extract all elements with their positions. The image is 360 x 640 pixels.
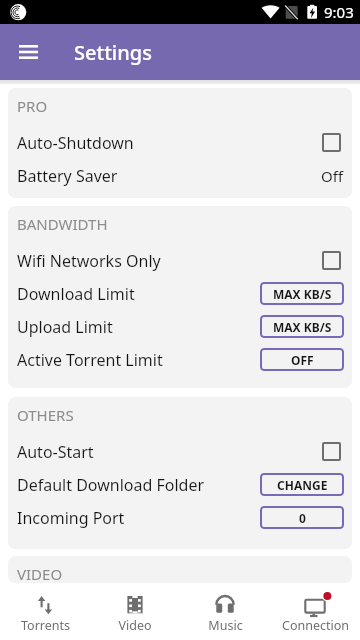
staticText: Settings [74, 39, 152, 66]
staticText: Music [208, 617, 243, 634]
staticText: MAX KB/S [273, 319, 332, 335]
staticText: Off [321, 166, 344, 186]
staticText: Active Torrent Limit [17, 349, 163, 371]
staticText: Download Limit [17, 283, 135, 305]
button[interactable]: Video [90, 583, 180, 640]
staticText: Battery Saver [17, 165, 118, 187]
staticText: PRO [17, 96, 48, 116]
button[interactable]: Auto-Start [8, 435, 352, 468]
button[interactable]: MAX KB/S [260, 315, 344, 338]
staticText: 0 [299, 510, 306, 526]
staticText: MAX KB/S [273, 286, 332, 302]
staticText: Incoming Port [17, 507, 125, 529]
button[interactable]: Torrents [0, 583, 90, 640]
staticText: VIDEO [17, 564, 63, 583]
staticText: Wifi Networks Only [17, 250, 161, 272]
staticText: Torrents [21, 617, 70, 634]
button[interactable]: Wifi Networks Only [8, 244, 352, 277]
staticText: Upload Limit [17, 316, 113, 338]
button[interactable]: Battery Saver [8, 159, 352, 192]
staticText: Auto-Shutdown [17, 132, 134, 154]
button[interactable]: 0 [260, 506, 344, 529]
staticText: Auto-Start [17, 441, 94, 463]
staticText: Video [118, 617, 152, 634]
staticText: BANDWIDTH [17, 214, 108, 234]
staticText: 9:03 [324, 2, 354, 22]
button[interactable]: Auto-Shutdown [8, 126, 352, 159]
staticText: CHANGE [277, 477, 328, 493]
button[interactable]: Music [180, 583, 270, 640]
button[interactable]: Connection [270, 583, 360, 640]
button[interactable]: OFF [260, 348, 344, 371]
button[interactable]: Open navigation drawer [8, 32, 48, 72]
staticText: OFF [291, 352, 314, 368]
staticText: OTHERS [17, 405, 74, 425]
staticText: Default Download Folder [17, 474, 205, 496]
staticText: Connection [282, 617, 349, 634]
button[interactable]: MAX KB/S [260, 282, 344, 305]
button[interactable]: CHANGE [260, 473, 344, 496]
